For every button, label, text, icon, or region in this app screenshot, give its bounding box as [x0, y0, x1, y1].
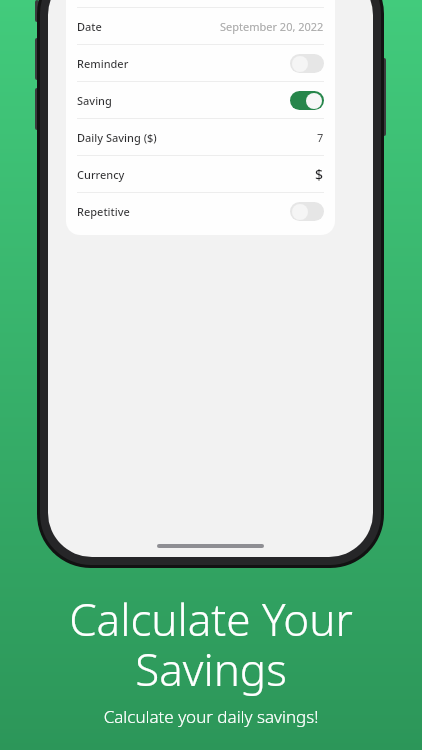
staticText: Date: [77, 19, 102, 34]
staticText: Daily Saving ($): [77, 130, 157, 145]
button[interactable]: Daily Saving ($): [66, 119, 335, 155]
button[interactable]: Toggle on: [290, 91, 324, 110]
staticText: $: [315, 165, 324, 184]
staticText: Currency: [77, 167, 125, 182]
button[interactable]: Date: [66, 8, 335, 44]
button[interactable]: Reminder: [66, 45, 335, 81]
staticText: Repetitive: [77, 204, 130, 219]
staticText: September 20, 2022: [220, 19, 324, 34]
staticText: 7: [317, 130, 324, 145]
staticText: Calculate Your Savings: [16, 589, 406, 699]
button[interactable]: Toggle off: [290, 202, 324, 221]
staticText: Reminder: [77, 56, 129, 71]
button[interactable]: Toggle off: [290, 54, 324, 73]
staticText: Saving: [77, 93, 112, 108]
button[interactable]: Saving: [66, 82, 335, 118]
button[interactable]: Repetitive: [66, 193, 335, 229]
staticText: Calculate your daily savings!: [16, 705, 406, 728]
button[interactable]: Currency: [66, 156, 335, 192]
